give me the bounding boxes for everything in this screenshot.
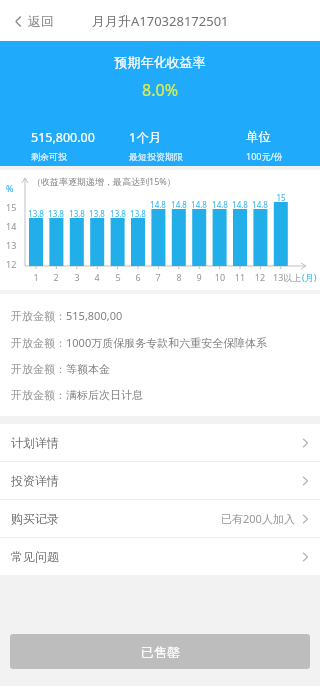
staticText: 开放金额： <box>11 388 66 402</box>
button[interactable]: 投资详情 <box>0 462 320 499</box>
staticText: 满标后次日计息 <box>66 388 143 402</box>
staticText: (月) <box>302 271 317 283</box>
staticText: 投资详情 <box>11 473 59 488</box>
staticText: 13.8 <box>45 208 67 219</box>
staticText: 7 <box>147 271 169 283</box>
button[interactable]: 已售罄 <box>10 634 310 669</box>
staticText: 15 <box>270 192 292 203</box>
staticText: 13.8 <box>66 208 88 219</box>
staticText: （收益率逐期递增，最高达到15%） <box>32 175 176 187</box>
staticText: 13以上 <box>273 271 302 283</box>
button[interactable]: 计划详情 <box>0 424 320 461</box>
staticText: 15 <box>6 201 17 213</box>
staticText: 开放金额： <box>11 362 66 376</box>
staticText: 月月升A170328172501 <box>92 12 229 30</box>
staticText: 2 <box>45 271 67 283</box>
staticText: 1个月 <box>129 129 162 146</box>
staticText: 515,800.00 <box>31 129 95 146</box>
staticText: 最短投资期限 <box>129 151 183 162</box>
staticText: 14.8 <box>168 199 190 210</box>
staticText: 已有200人加入 <box>221 511 295 526</box>
staticText: 13.8 <box>107 208 129 219</box>
staticText: 开放金额： <box>11 309 66 323</box>
staticText: 8.0% <box>0 79 320 101</box>
staticText: 12 <box>6 258 17 270</box>
staticText: 3 <box>66 271 88 283</box>
staticText: 1000万质保服务专款和六重安全保障体系 <box>66 335 268 350</box>
staticText: 购买记录 <box>11 511 59 526</box>
staticText: 14 <box>6 220 17 232</box>
staticText: 515,800,00 <box>66 308 123 323</box>
staticText: 10 <box>209 271 231 283</box>
staticText: 8 <box>168 271 190 283</box>
staticText: 12 <box>249 271 271 283</box>
staticText: 6 <box>127 271 149 283</box>
staticText: 计划详情 <box>11 435 59 450</box>
staticText: 剩余可投 <box>31 151 67 162</box>
staticText: 单位 <box>246 129 271 145</box>
staticText: 100元/份 <box>246 150 283 162</box>
button[interactable]: 购买记录 <box>0 500 320 537</box>
staticText: 4 <box>86 271 108 283</box>
staticText: 13.8 <box>86 208 108 219</box>
staticText: % <box>6 182 14 194</box>
staticText: 5 <box>107 271 129 283</box>
staticText: 13.8 <box>25 208 47 219</box>
staticText: 13 <box>6 239 17 251</box>
staticText: 14.8 <box>147 199 169 210</box>
staticText: 9 <box>188 271 210 283</box>
staticText: 11 <box>229 271 251 283</box>
staticText: 常见问题 <box>11 549 59 564</box>
staticText: 预期年化收益率 <box>0 54 320 70</box>
staticText: 14.8 <box>188 199 210 210</box>
staticText: 开放金额： <box>11 336 66 350</box>
button[interactable]: 常见问题 <box>0 538 320 575</box>
staticText: 1 <box>25 271 47 283</box>
staticText: 14.8 <box>229 199 251 210</box>
staticText: 已售罄 <box>141 644 180 660</box>
staticText: 14.8 <box>249 199 271 210</box>
staticText: 等额本金 <box>66 362 110 376</box>
staticText: 13.8 <box>127 208 149 219</box>
staticText: 14.8 <box>209 199 231 210</box>
staticText: 返回 <box>28 13 54 29</box>
button[interactable]: 返回 <box>10 7 58 35</box>
